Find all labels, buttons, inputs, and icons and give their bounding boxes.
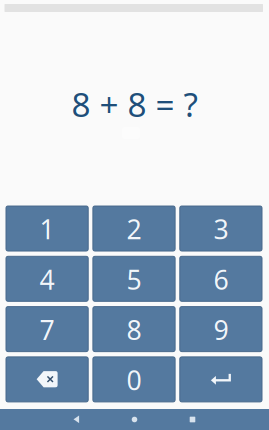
staticText: 9 (213, 312, 228, 347)
button[interactable]: Back (47, 409, 105, 430)
button[interactable]: 2 (93, 206, 175, 251)
button[interactable]: Delete (6, 357, 88, 402)
button[interactable]: Home (105, 409, 163, 430)
button[interactable]: 4 (6, 256, 88, 301)
button[interactable]: 5 (93, 256, 175, 301)
staticText: 8 + 8 = ? (71, 82, 197, 126)
button[interactable]: 6 (180, 256, 262, 301)
staticText: 3 (213, 211, 228, 247)
button[interactable]: Recents (163, 409, 221, 430)
staticText: 4 (40, 262, 55, 297)
button[interactable]: 3 (180, 206, 262, 251)
staticText: 2 (126, 211, 141, 247)
staticText: 6 (213, 262, 228, 297)
button[interactable]: Enter (180, 357, 262, 402)
button[interactable]: 7 (6, 307, 88, 352)
staticText: 1 (40, 211, 55, 247)
button[interactable]: 1 (6, 206, 88, 251)
staticText: 0 (126, 362, 141, 398)
staticText: 8 (126, 312, 141, 347)
button[interactable]: 8 (93, 307, 175, 352)
staticText: 7 (40, 312, 55, 347)
button[interactable]: 0 (93, 357, 175, 402)
staticText: 5 (126, 262, 141, 297)
button[interactable]: 9 (180, 307, 262, 352)
